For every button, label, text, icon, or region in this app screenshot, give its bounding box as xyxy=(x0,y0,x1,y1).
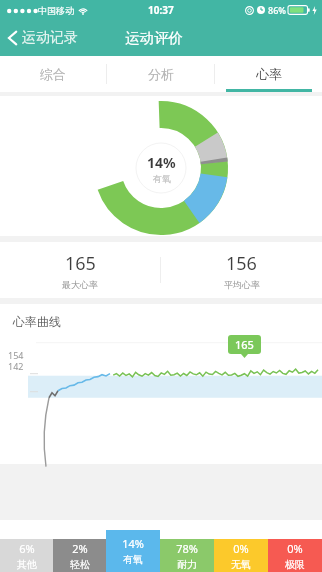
staticText: 142 xyxy=(8,360,24,372)
staticText: 耐力 xyxy=(177,558,197,571)
staticText: 156 xyxy=(226,251,257,276)
staticText: 6% xyxy=(19,541,35,556)
button[interactable]: 14% xyxy=(106,530,160,572)
button[interactable]: Back 运动记录 xyxy=(0,23,88,53)
button[interactable]: 2% xyxy=(53,539,106,572)
button[interactable]: 156 xyxy=(161,251,322,290)
staticText: 86% xyxy=(268,4,286,16)
staticText: 分析 xyxy=(148,66,174,82)
staticText: 10:37 xyxy=(148,3,174,17)
staticText: 心率 xyxy=(256,66,282,82)
staticText: 中国移动 xyxy=(38,5,74,16)
staticText: 综合 xyxy=(40,66,66,82)
staticText: 心率曲线 xyxy=(13,314,61,329)
staticText: 无氧 xyxy=(231,558,251,571)
staticText: 2% xyxy=(72,541,88,556)
staticText: 轻松 xyxy=(70,558,90,571)
staticText: 14% xyxy=(122,536,144,551)
staticText: 最大心率 xyxy=(62,279,98,290)
staticText: 运动评价 xyxy=(125,29,183,47)
button[interactable]: 78% xyxy=(160,539,214,572)
button[interactable]: 心率 xyxy=(215,56,322,92)
button[interactable]: 165 xyxy=(0,251,160,290)
staticText: 165 xyxy=(235,337,254,352)
staticText: 154 xyxy=(8,349,24,361)
staticText: 极限 xyxy=(285,558,305,571)
staticText: 14% xyxy=(147,153,176,172)
button[interactable]: 分析 xyxy=(107,56,214,92)
staticText: 平均心率 xyxy=(224,279,260,290)
button[interactable]: 综合 xyxy=(0,56,106,92)
button[interactable]: 0% xyxy=(268,539,322,572)
staticText: 78% xyxy=(176,541,198,556)
staticText: 其他 xyxy=(17,558,37,571)
button[interactable]: 6% xyxy=(0,539,53,572)
staticText: 有氧 xyxy=(153,173,171,184)
button[interactable]: 0% xyxy=(214,539,268,572)
staticText: 运动记录 xyxy=(22,29,78,47)
staticText: 0% xyxy=(287,541,303,556)
staticText: 0% xyxy=(233,541,249,556)
staticText: 165 xyxy=(65,251,96,276)
staticText: 有氧 xyxy=(123,553,143,566)
